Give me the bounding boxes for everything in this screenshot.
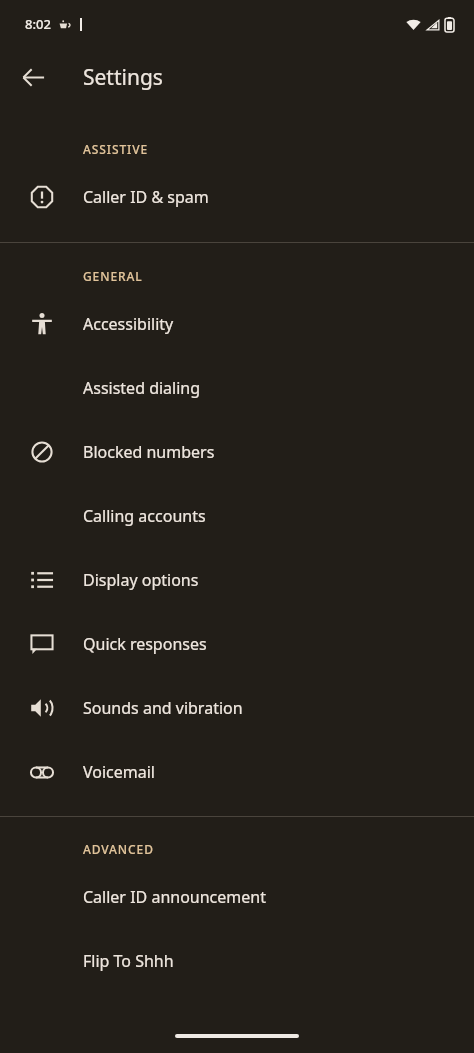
staticText: Caller ID announcement xyxy=(83,886,266,908)
button[interactable]: Accessibility xyxy=(0,292,474,356)
button[interactable]: Back xyxy=(9,53,57,101)
staticText: Blocked numbers xyxy=(83,441,215,463)
button[interactable]: Quick responses xyxy=(0,612,474,676)
staticText: GENERAL xyxy=(83,268,143,284)
button[interactable]: Sounds and vibration xyxy=(0,676,474,740)
staticText: Quick responses xyxy=(83,633,207,655)
staticText: 8:02 xyxy=(25,15,51,33)
staticText: Voicemail xyxy=(83,761,155,783)
button[interactable]: Display options xyxy=(0,548,474,612)
button[interactable]: Caller ID & spam xyxy=(0,165,474,229)
staticText: Caller ID & spam xyxy=(83,186,209,208)
button[interactable]: Blocked numbers xyxy=(0,420,474,484)
staticText: Sounds and vibration xyxy=(83,697,243,719)
staticText: ASSISTIVE xyxy=(83,141,149,157)
staticText: Flip To Shhh xyxy=(83,950,174,972)
staticText: Calling accounts xyxy=(83,505,206,527)
button[interactable]: Voicemail xyxy=(0,740,474,804)
button[interactable]: Flip To Shhh xyxy=(0,929,474,993)
staticText: Accessibility xyxy=(83,313,174,335)
staticText: ADVANCED xyxy=(83,841,154,857)
staticText: Display options xyxy=(83,569,199,591)
button[interactable]: Calling accounts xyxy=(0,484,474,548)
staticText: Assisted dialing xyxy=(83,377,201,399)
button[interactable]: Caller ID announcement xyxy=(0,865,474,929)
staticText: Settings xyxy=(83,63,163,92)
button[interactable]: Assisted dialing xyxy=(0,356,474,420)
